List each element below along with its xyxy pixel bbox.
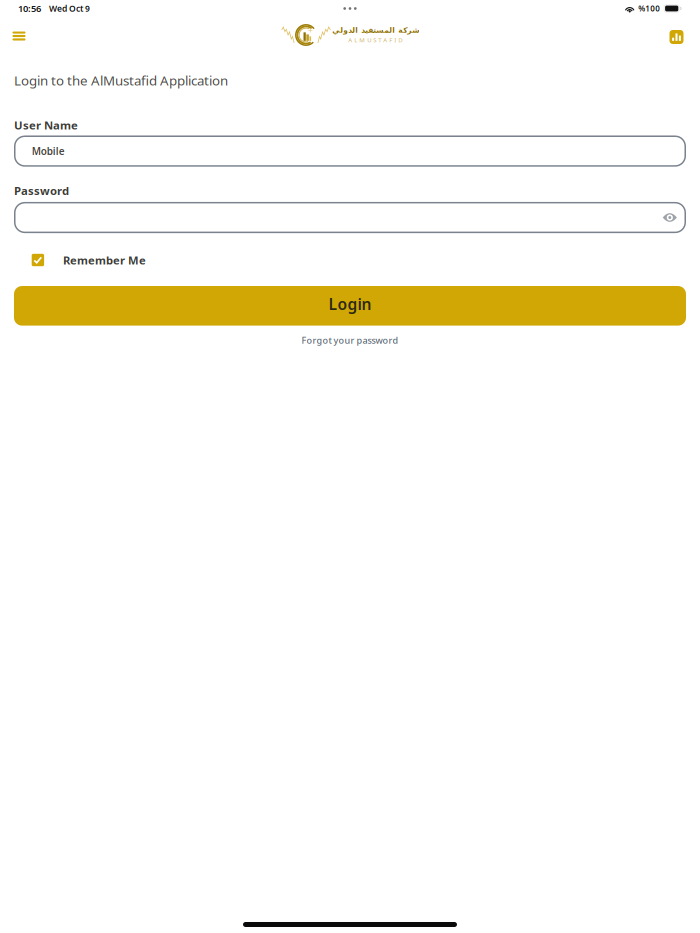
staticText: Login (328, 293, 371, 315)
staticText: A L M U S T A F I D (348, 36, 402, 44)
button[interactable]: Forgot your password (14, 331, 686, 349)
staticText: Forgot your password (301, 334, 398, 346)
staticText: %100 (638, 3, 660, 14)
button[interactable]: Remember Me (14, 250, 686, 270)
staticText: شركة المستفيد الدولي (332, 26, 419, 35)
staticText: Remember Me (63, 252, 146, 268)
button[interactable]: Reports (661, 21, 691, 49)
button[interactable]: Login (14, 286, 686, 326)
staticText: Login to the AlMustafid Application (14, 71, 228, 89)
staticText: Password (14, 183, 69, 198)
button[interactable]: Show password (658, 208, 681, 227)
staticText: 10:56 (18, 2, 41, 15)
staticText: Wed Oct 9 (49, 3, 90, 14)
staticText: User Name (14, 117, 78, 133)
button[interactable]: Menu (4, 21, 33, 48)
staticText: Mobile (32, 144, 65, 158)
